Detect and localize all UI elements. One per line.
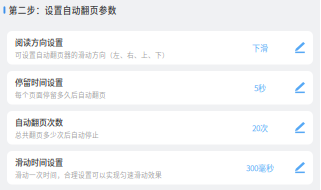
staticText: 滑动时间设置: [15, 156, 63, 168]
staticText: 每个页面停留多久后自动翻页: [15, 90, 106, 99]
staticText: 可设置自动翻页器的滑动方向（左、右、上、下）: [15, 50, 169, 59]
button[interactable]: 停留时间设置: [7, 71, 313, 104]
staticText: 总共翻页多少次后自动停止: [15, 130, 99, 139]
staticText: 20次: [252, 122, 268, 134]
button[interactable]: 滑动时间设置: [7, 151, 313, 184]
staticText: 第二步：设置自动翻页参数: [9, 4, 117, 16]
staticText: 滑动一次时间，合理设置可以实现匀速滑动效果: [15, 170, 162, 179]
staticText: 下滑: [252, 42, 268, 54]
staticText: 自动翻页次数: [15, 116, 63, 128]
button[interactable]: 阅读方向设置: [7, 31, 313, 64]
staticText: 阅读方向设置: [15, 36, 63, 48]
button[interactable]: 自动翻页次数: [7, 111, 313, 144]
staticText: 300毫秒: [246, 162, 274, 174]
staticText: 5秒: [254, 82, 266, 94]
staticText: 停留时间设置: [15, 76, 63, 88]
